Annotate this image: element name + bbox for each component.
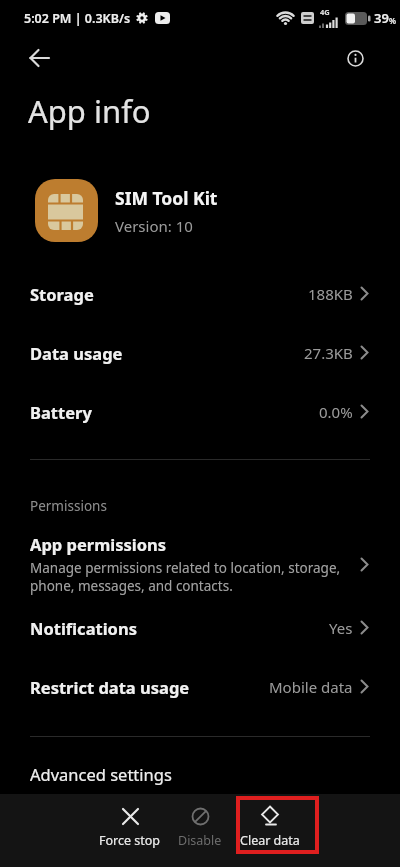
staticText: App permissions (30, 533, 167, 555)
button[interactable]: Battery (0, 382, 400, 441)
staticText: Mobile data (269, 677, 353, 697)
staticText: % (389, 15, 396, 26)
staticText: 188KB (308, 284, 353, 304)
staticText: 39 (374, 9, 389, 27)
staticText: Yes (329, 618, 353, 638)
button[interactable]: App permissions (0, 533, 400, 595)
staticText: Data usage (30, 342, 123, 364)
staticText: Permissions (30, 497, 107, 515)
button[interactable]: Force stop (95, 794, 165, 867)
staticText: Version: 10 (115, 216, 193, 236)
button[interactable]: Storage (0, 264, 400, 323)
button[interactable]: Restrict data usage (0, 657, 400, 716)
staticText: 27.3KB (304, 343, 353, 363)
button[interactable] (22, 40, 58, 76)
staticText: Battery (30, 401, 92, 423)
staticText: App info (28, 90, 151, 132)
staticText: Clear data (240, 832, 300, 849)
staticText: Manage permissions related to location, … (30, 559, 341, 595)
staticText: Storage (30, 283, 94, 305)
button[interactable]: Clear data (235, 794, 305, 867)
staticText: 4G (320, 7, 330, 17)
staticText: Disable (178, 832, 222, 849)
staticText: 5:02 PM | 0.3KB/s (24, 10, 131, 27)
button[interactable]: Data usage (0, 323, 400, 382)
staticText: Advanced settings (30, 763, 172, 785)
button[interactable]: Notifications (0, 598, 400, 657)
button[interactable]: Disable (165, 794, 235, 867)
button[interactable] (340, 43, 370, 73)
staticText: Restrict data usage (30, 676, 190, 698)
staticText: 0.0% (319, 402, 353, 422)
staticText: SIM Tool Kit (115, 186, 218, 210)
staticText: Force stop (99, 832, 161, 849)
staticText: Notifications (30, 617, 137, 639)
